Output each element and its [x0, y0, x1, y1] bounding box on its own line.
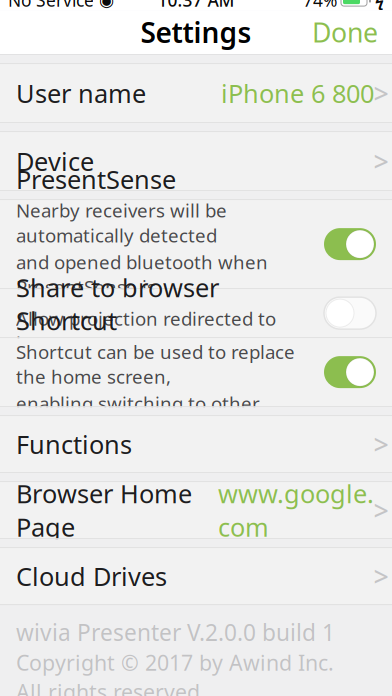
staticText: Settings — [140, 13, 251, 51]
staticText: Functions — [16, 427, 132, 461]
button[interactable]: User name — [0, 64, 392, 122]
staticText: wivia Presenter V.2.0.0 build 1 — [16, 617, 335, 647]
button[interactable]: Device — [0, 132, 392, 190]
staticText: ϟ — [375, 0, 384, 11]
staticText: iPhone 6 800 — [221, 76, 374, 110]
staticText: enabling switching to other functionalit… — [16, 391, 260, 440]
staticText: Device — [16, 144, 94, 178]
staticText: Shortcut — [16, 304, 117, 337]
staticText: PresentSense — [16, 162, 176, 196]
button[interactable]: Cloud Drives — [0, 548, 392, 604]
staticText: and opened bluetooth when PresentSense i… — [16, 249, 268, 299]
staticText: Done — [312, 14, 378, 50]
staticText: 74% — [303, 0, 337, 12]
staticText: Cloud Drives — [16, 559, 167, 593]
staticText: 10:37 AM — [157, 0, 234, 12]
staticText: Allow projection redirected to browser. — [16, 306, 276, 356]
staticText: ◉ — [99, 0, 114, 10]
staticText: No Service — [8, 0, 94, 12]
staticText: Shortcut can be used to replace the home… — [16, 339, 295, 389]
button[interactable]: PresentSense — [324, 228, 376, 260]
button[interactable]: Browser Home Page — [0, 482, 392, 538]
staticText: truned on. — [16, 301, 110, 326]
staticText: Share to browser — [16, 270, 219, 304]
button[interactable]: Done — [298, 10, 392, 54]
staticText: Copyright © 2017 by Awind Inc. — [16, 648, 334, 676]
staticText: User name — [16, 76, 146, 110]
staticText: Nearby receivers will be automatically d… — [16, 198, 227, 248]
button[interactable]: Share to browser — [324, 297, 376, 329]
staticText: > — [373, 558, 388, 594]
staticText: > — [373, 143, 388, 179]
staticText: > — [373, 75, 388, 111]
staticText: www.google.com — [218, 476, 374, 544]
button[interactable]: Functions — [0, 416, 392, 472]
button[interactable]: Shortcut — [324, 356, 376, 388]
staticText: > — [373, 492, 388, 528]
staticText: > — [373, 426, 388, 462]
staticText: Browser Home Page — [16, 476, 192, 544]
staticText: All rights reserved. — [16, 678, 206, 696]
